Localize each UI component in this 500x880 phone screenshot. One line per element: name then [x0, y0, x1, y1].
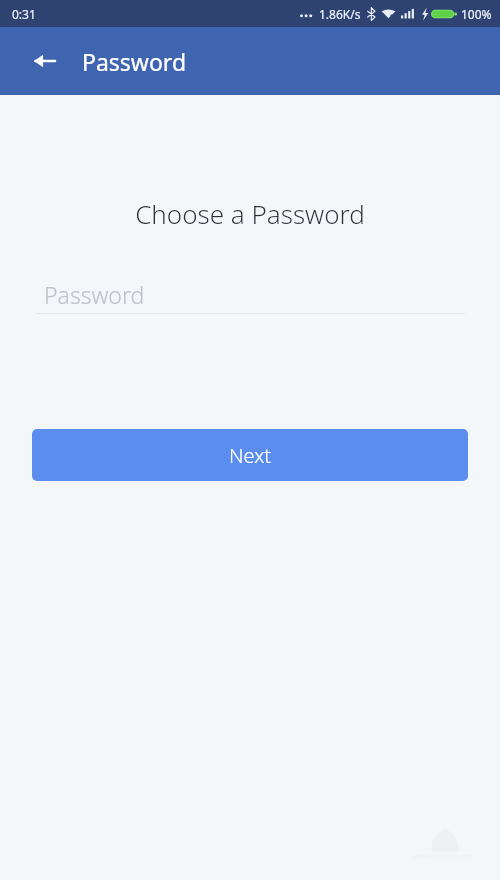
- staticText: Next: [229, 442, 272, 469]
- staticText: Choose a Password: [0, 196, 500, 231]
- button[interactable]: Password: [36, 275, 465, 314]
- staticText: 1.86K/s: [319, 6, 361, 22]
- staticText: Password: [82, 46, 187, 77]
- staticText: Password: [44, 279, 145, 310]
- button[interactable]: Next: [32, 429, 468, 481]
- button[interactable]: Back: [22, 38, 68, 84]
- staticText: 100%: [461, 6, 492, 22]
- staticText: 0:31: [12, 6, 36, 22]
